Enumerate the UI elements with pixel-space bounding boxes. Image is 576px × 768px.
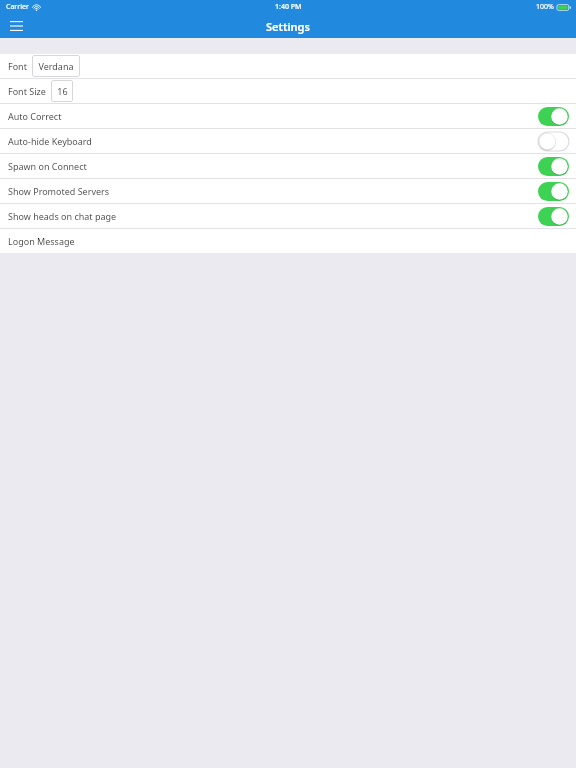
- staticText: 16: [57, 85, 68, 97]
- staticText: Auto-hide Keyboard: [8, 135, 92, 147]
- button[interactable]: Logon Message: [0, 229, 576, 253]
- button[interactable]: Show heads on chat page: [0, 204, 576, 228]
- staticText: 100%: [536, 2, 554, 12]
- button[interactable]: Spawn on Connect: [0, 154, 576, 178]
- button[interactable]: Show Promoted Servers: [0, 179, 576, 203]
- staticText: Carrier: [6, 2, 29, 12]
- staticText: Settings: [266, 19, 310, 34]
- staticText: Verdana: [38, 60, 74, 72]
- button[interactable]: Auto-hide Keyboard: [0, 129, 576, 153]
- button[interactable]: Menu: [0, 14, 32, 38]
- button[interactable]: Auto Correct: [0, 104, 576, 128]
- button[interactable]: On: [538, 107, 569, 126]
- button[interactable]: Off: [538, 132, 569, 151]
- button[interactable]: Font: [0, 54, 576, 78]
- button[interactable]: On: [538, 207, 569, 226]
- staticText: Spawn on Connect: [8, 160, 87, 172]
- staticText: 1:40 PM: [275, 2, 302, 12]
- staticText: Auto Correct: [8, 110, 62, 122]
- button[interactable]: Font Size: [0, 79, 576, 103]
- staticText: Logon Message: [8, 235, 75, 247]
- staticText: Font: [8, 60, 27, 72]
- staticText: Show heads on chat page: [8, 210, 117, 222]
- staticText: Font Size: [8, 85, 46, 97]
- button[interactable]: On: [538, 157, 569, 176]
- staticText: Show Promoted Servers: [8, 185, 110, 197]
- button[interactable]: On: [538, 182, 569, 201]
